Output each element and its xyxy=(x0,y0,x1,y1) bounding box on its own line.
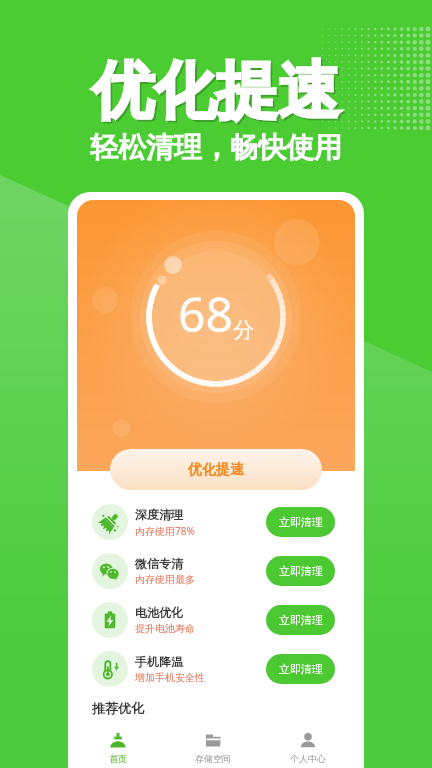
staticText: 立即清理 xyxy=(279,564,323,578)
button[interactable]: 立即清理 xyxy=(266,556,335,586)
staticText: 立即清理 xyxy=(279,613,323,627)
button[interactable]: 深度清理 xyxy=(68,500,364,544)
staticText: 68 xyxy=(178,281,233,346)
staticText: 首页 xyxy=(109,753,127,764)
staticText: 分 xyxy=(233,317,254,343)
button[interactable]: 立即清理 xyxy=(266,654,335,684)
staticText: 电池优化 xyxy=(135,605,183,620)
staticText: 个人中心 xyxy=(290,753,326,764)
button[interactable]: 手机降温 xyxy=(68,647,364,691)
staticText: 推荐优化 xyxy=(92,700,144,716)
button[interactable]: 存储空间 xyxy=(165,727,260,768)
button[interactable]: 首页 xyxy=(71,727,165,768)
staticText: 提升电池寿命 xyxy=(135,622,195,635)
staticText: 内存使用最多 xyxy=(135,573,195,586)
button[interactable]: 立即清理 xyxy=(266,507,335,537)
staticText: 轻松清理，畅快使用 xyxy=(0,130,432,165)
staticText: 手机降温 xyxy=(135,654,183,669)
staticText: 深度清理 xyxy=(135,507,183,522)
staticText: 存储空间 xyxy=(195,753,231,764)
staticText: 微信专清 xyxy=(135,556,183,571)
staticText: 增加手机安全性 xyxy=(135,671,205,684)
button[interactable]: 个人中心 xyxy=(260,727,355,768)
staticText: 优化提速 xyxy=(2,54,432,132)
button[interactable]: 立即清理 xyxy=(266,605,335,635)
staticText: 优化提速 xyxy=(188,461,244,479)
button[interactable]: 电池优化 xyxy=(68,598,364,642)
staticText: 立即清理 xyxy=(279,662,323,676)
button[interactable]: 微信专清 xyxy=(68,549,364,593)
button[interactable]: 优化提速 xyxy=(110,449,322,490)
staticText: 优化提速 xyxy=(0,52,432,130)
staticText: 内存使用78% xyxy=(135,524,195,538)
staticText: 立即清理 xyxy=(279,515,323,529)
